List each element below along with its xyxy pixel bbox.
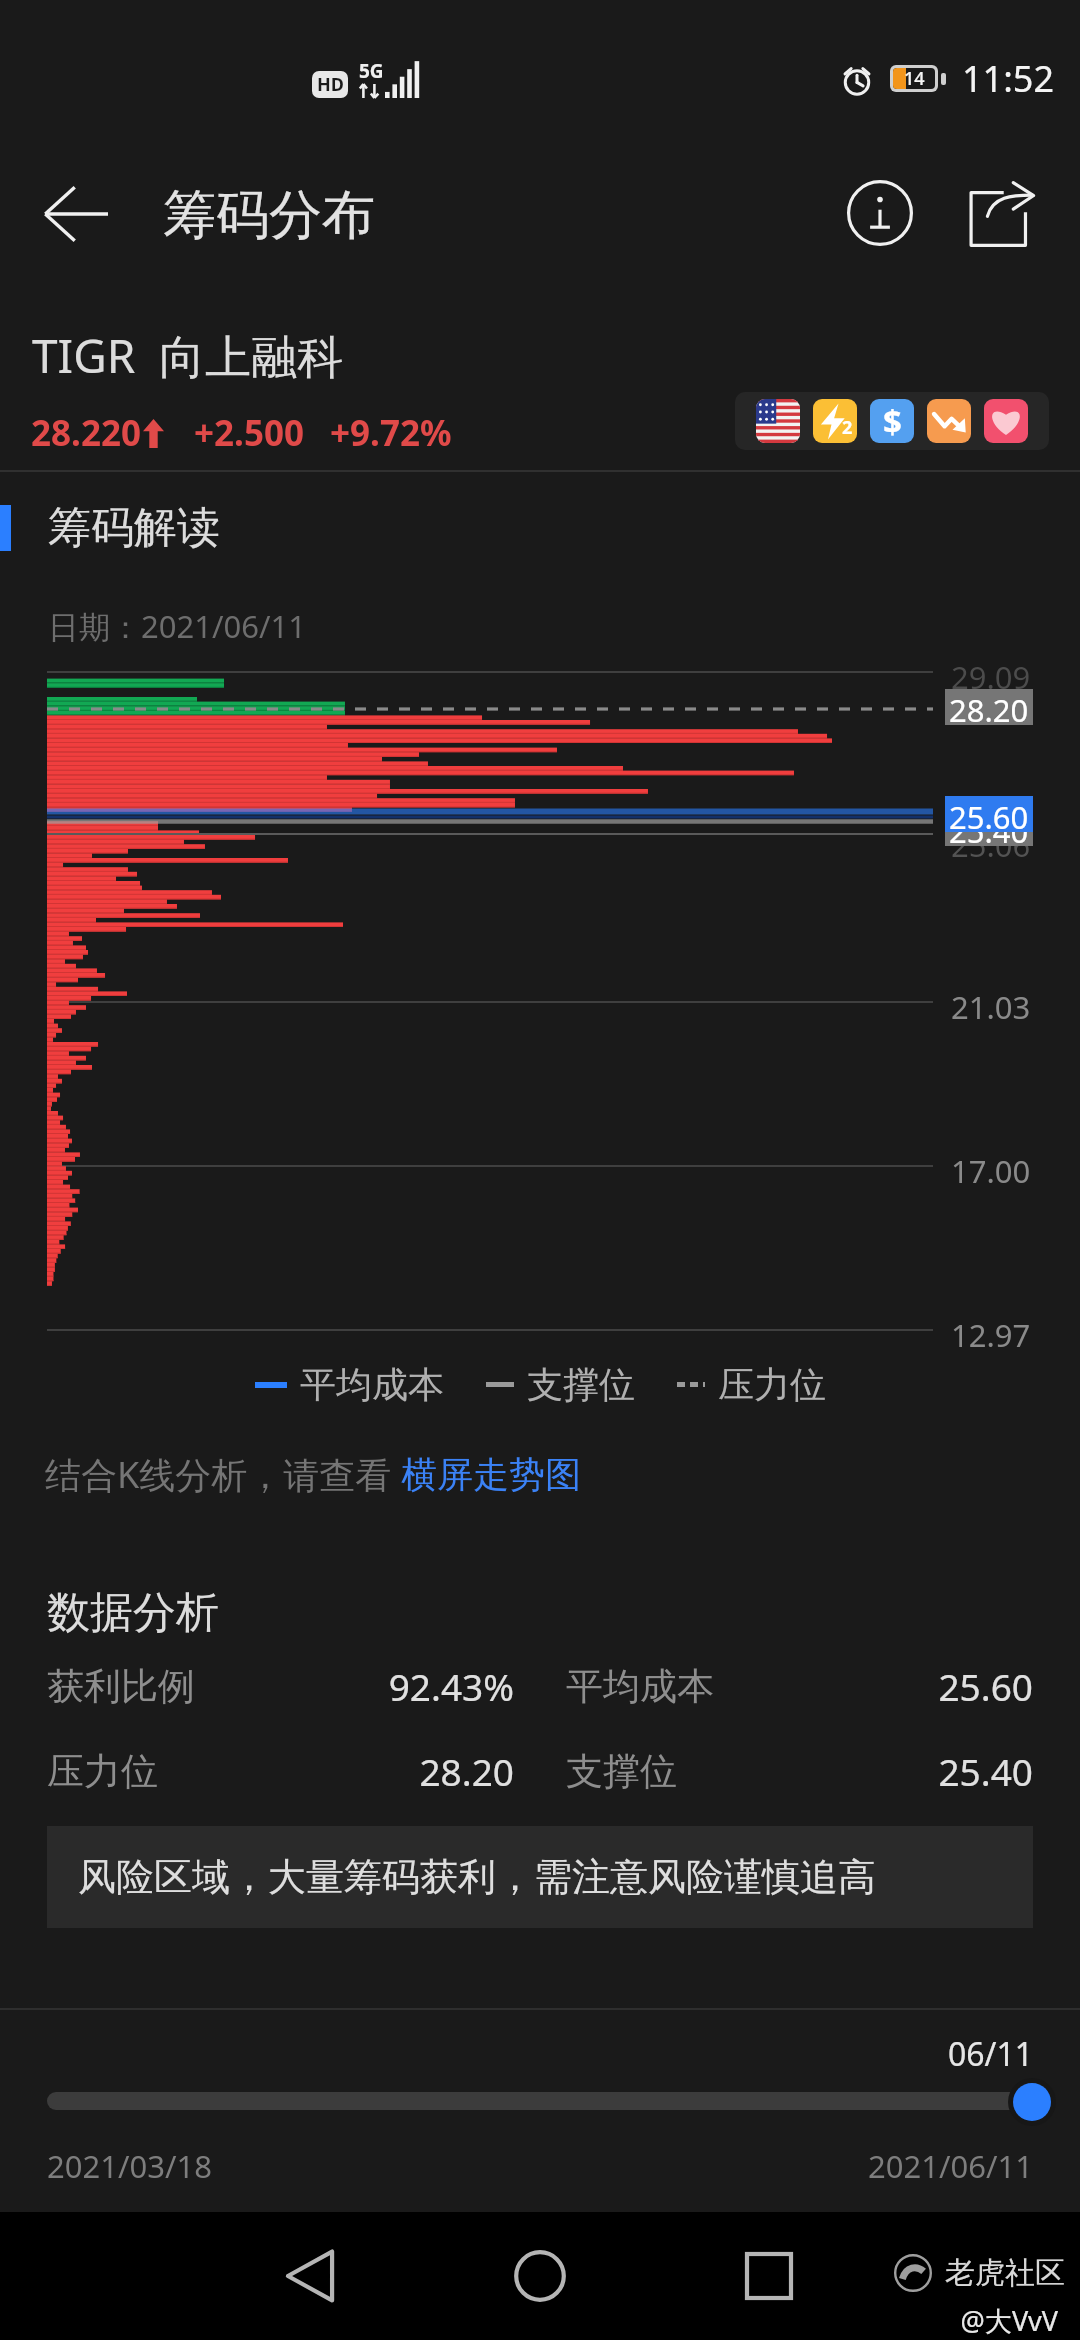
- staticText: 压力位: [718, 1362, 826, 1407]
- staticText: 06/11: [0, 2032, 1033, 2076]
- button[interactable]: Home: [502, 2238, 578, 2314]
- staticText: 29.09: [951, 656, 1031, 698]
- button[interactable]: Recents: [731, 2238, 807, 2314]
- staticText: 筹码分布: [163, 182, 375, 249]
- button[interactable]: Info: [841, 174, 919, 252]
- staticText: 支撑位: [527, 1362, 635, 1407]
- staticText: 风险区域，大量筹码获利，需注意风险谨慎追高: [78, 1853, 876, 1901]
- staticText: 平均成本: [566, 1663, 714, 1710]
- staticText: 压力位: [47, 1748, 158, 1795]
- staticText: 28.20: [158, 1746, 514, 1796]
- staticText: 数据分析: [47, 1586, 219, 1640]
- staticText: 25.60: [714, 1661, 1033, 1711]
- button[interactable]: US market: [756, 399, 800, 443]
- staticText: 25.06: [951, 824, 1031, 866]
- staticText: 11:52: [962, 54, 1055, 103]
- button[interactable]: Level 2 quotes: [813, 399, 857, 443]
- button[interactable]: Back: [28, 166, 124, 262]
- button[interactable]: Back: [272, 2238, 348, 2314]
- button[interactable]: Dividend: [870, 399, 914, 443]
- staticText: +9.72%: [330, 409, 452, 457]
- staticText: 17.00: [951, 1150, 1031, 1192]
- staticText: HD: [317, 72, 344, 97]
- staticText: @大VvV: [0, 2302, 1058, 2339]
- button[interactable]: Date slider: [1013, 2083, 1051, 2121]
- staticText: 获利比例: [47, 1663, 195, 1710]
- staticText: 老虎社区: [945, 2254, 1065, 2292]
- staticText: 结合K线分析，请查看: [45, 1450, 401, 1499]
- button[interactable]: 横屏走势图: [401, 1452, 581, 1497]
- staticText: 平均成本: [300, 1362, 444, 1407]
- staticText: 14: [904, 66, 925, 91]
- button[interactable]: Share: [962, 176, 1040, 254]
- staticText: 筹码解读: [48, 501, 220, 555]
- staticText: $: [883, 399, 902, 443]
- staticText: +2.500: [194, 409, 304, 457]
- staticText: 支撑位: [566, 1748, 677, 1795]
- staticText: 21.03: [951, 986, 1031, 1028]
- staticText: 28.220: [31, 409, 141, 457]
- staticText: 2: [842, 415, 853, 440]
- staticText: 25.60: [949, 796, 1029, 832]
- staticText: 92.43%: [195, 1661, 514, 1711]
- staticText: 28.20: [949, 689, 1029, 725]
- staticText: 2021/03/18: [47, 2145, 212, 2187]
- staticText: 日期：2021/06/11: [48, 605, 306, 647]
- staticText: TIGR 向上融科: [32, 324, 344, 387]
- button[interactable]: Add to watchlist: [984, 399, 1028, 443]
- button[interactable]: Short selling: [927, 399, 971, 443]
- staticText: 12.97: [951, 1314, 1031, 1356]
- button[interactable]: Date range slider: [47, 2092, 1033, 2110]
- staticText: 5G: [359, 58, 384, 84]
- staticText: 横屏走势图: [401, 1452, 581, 1497]
- staticText: 2021/06/11: [0, 2145, 1033, 2187]
- staticText: 25.40: [949, 810, 1029, 846]
- button[interactable]: 老虎社区: [894, 2254, 1065, 2292]
- staticText: 25.40: [677, 1746, 1033, 1796]
